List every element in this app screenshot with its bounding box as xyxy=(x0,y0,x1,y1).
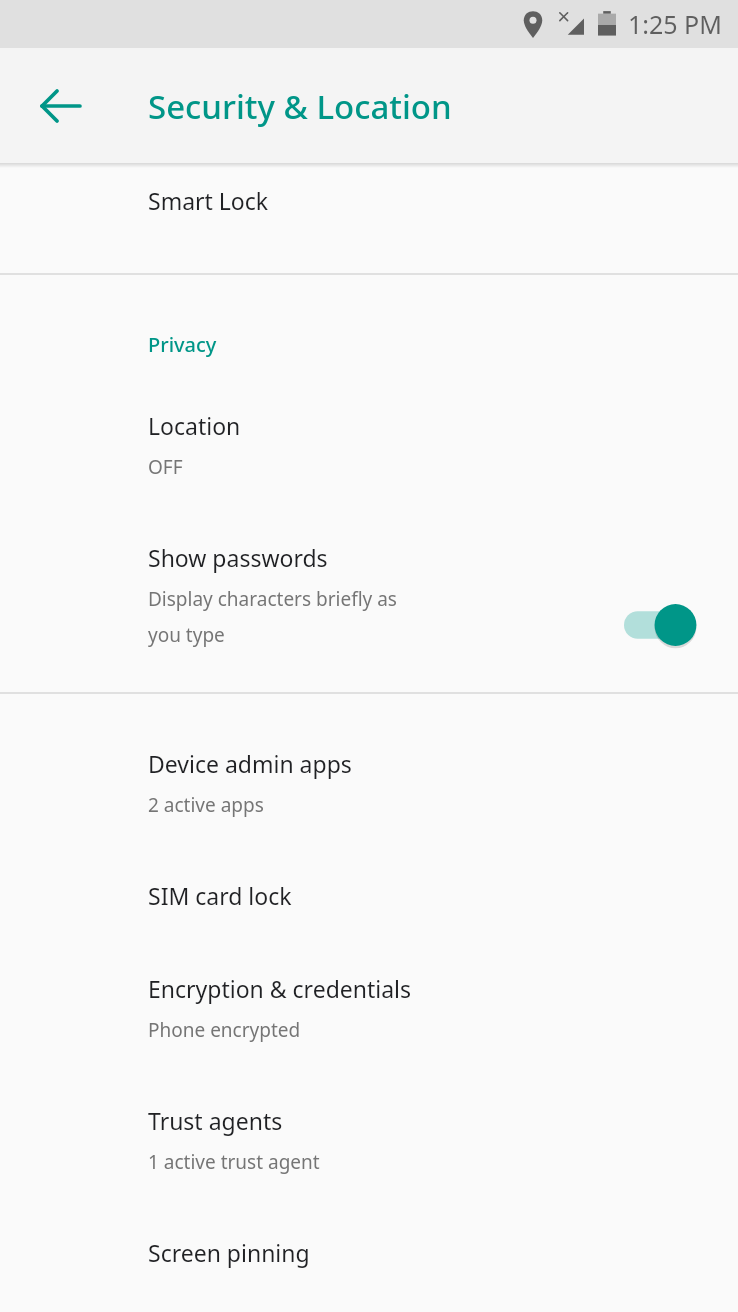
button[interactable]: SIM card lock xyxy=(0,880,738,973)
button[interactable]: Device admin apps xyxy=(0,694,738,880)
staticText: 2 active apps xyxy=(148,792,264,818)
button[interactable]: Trust agents xyxy=(0,1105,738,1237)
staticText: 1 active trust agent xyxy=(148,1149,320,1175)
staticText: Phone encrypted xyxy=(148,1017,301,1043)
staticText: Device admin apps xyxy=(148,748,352,779)
staticText: Location xyxy=(148,410,241,441)
staticText: SIM card lock xyxy=(148,880,292,911)
staticText: Smart Lock xyxy=(148,185,269,216)
button[interactable]: Show passwords xyxy=(0,542,738,692)
staticText: 1:25 PM xyxy=(628,7,722,41)
staticText: Security & Location xyxy=(148,84,452,129)
staticText: Trust agents xyxy=(148,1105,283,1136)
staticText: Show passwords xyxy=(148,542,328,573)
staticText: Display characters briefly as xyxy=(148,586,397,612)
staticText: you type xyxy=(148,622,225,648)
button[interactable]: Navigate up xyxy=(19,64,103,148)
staticText: Screen pinning xyxy=(148,1237,310,1268)
button[interactable]: Smart Lock xyxy=(0,168,738,273)
button[interactable]: Location xyxy=(0,410,738,542)
button[interactable]: Screen pinning xyxy=(0,1237,738,1308)
button[interactable]: Show passwords toggle, on xyxy=(624,602,700,648)
staticText: Privacy xyxy=(148,331,217,358)
button[interactable]: Encryption & credentials xyxy=(0,973,738,1105)
staticText: OFF xyxy=(148,454,183,480)
staticText: Encryption & credentials xyxy=(148,973,412,1004)
